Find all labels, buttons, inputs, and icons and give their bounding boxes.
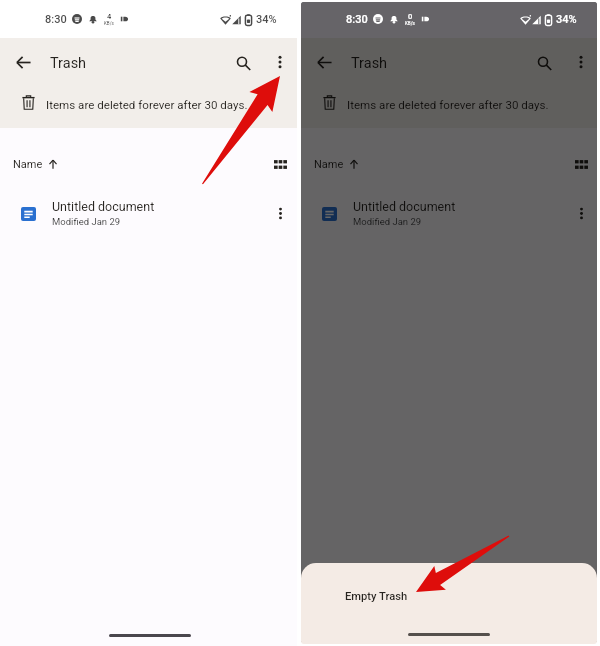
button[interactable]: Back: [3, 42, 43, 82]
button[interactable]: Untitled document: [0, 196, 297, 232]
staticText: Untitled document: [52, 199, 155, 214]
staticText: KB/s: [104, 21, 114, 26]
staticText: 0: [408, 12, 413, 21]
button[interactable]: Item options: [262, 195, 298, 231]
button[interactable]: Search: [223, 43, 263, 83]
button[interactable]: Back: [304, 42, 344, 82]
button[interactable]: More options: [562, 43, 597, 81]
button[interactable]: More options: [261, 43, 299, 81]
staticText: 4: [107, 12, 112, 21]
staticText: 8:30: [45, 13, 67, 26]
staticText: KB/s: [405, 21, 415, 26]
staticText: Name: [314, 158, 344, 171]
staticText: Trash: [351, 55, 388, 72]
button[interactable]: Grid view: [262, 145, 300, 183]
button[interactable]: Untitled document: [301, 196, 597, 232]
staticText: Modified Jan 29: [353, 216, 422, 227]
button[interactable]: Empty Trash: [301, 563, 597, 619]
staticText: Modified Jan 29: [52, 216, 121, 227]
staticText: Untitled document: [353, 199, 456, 214]
staticText: Trash: [50, 55, 87, 72]
staticText: 34%: [256, 13, 277, 26]
staticText: Name: [13, 158, 43, 171]
staticText: KB/s: [405, 21, 415, 26]
button[interactable]: Item options: [563, 195, 597, 231]
staticText: 34%: [556, 13, 577, 26]
staticText: Empty Trash: [345, 590, 408, 603]
button[interactable]: Search: [524, 43, 564, 83]
staticText: 34%: [556, 13, 577, 26]
staticText: Items are deleted forever after 30 days.: [46, 98, 248, 112]
staticText: 0: [408, 12, 413, 21]
button[interactable]: Grid view: [563, 145, 597, 183]
button[interactable]: Name: [8, 154, 62, 175]
staticText: Items are deleted forever after 30 days.: [347, 98, 549, 112]
button[interactable]: Name: [309, 154, 363, 175]
staticText: 8:30: [346, 13, 368, 26]
staticText: 8:30: [346, 13, 368, 26]
